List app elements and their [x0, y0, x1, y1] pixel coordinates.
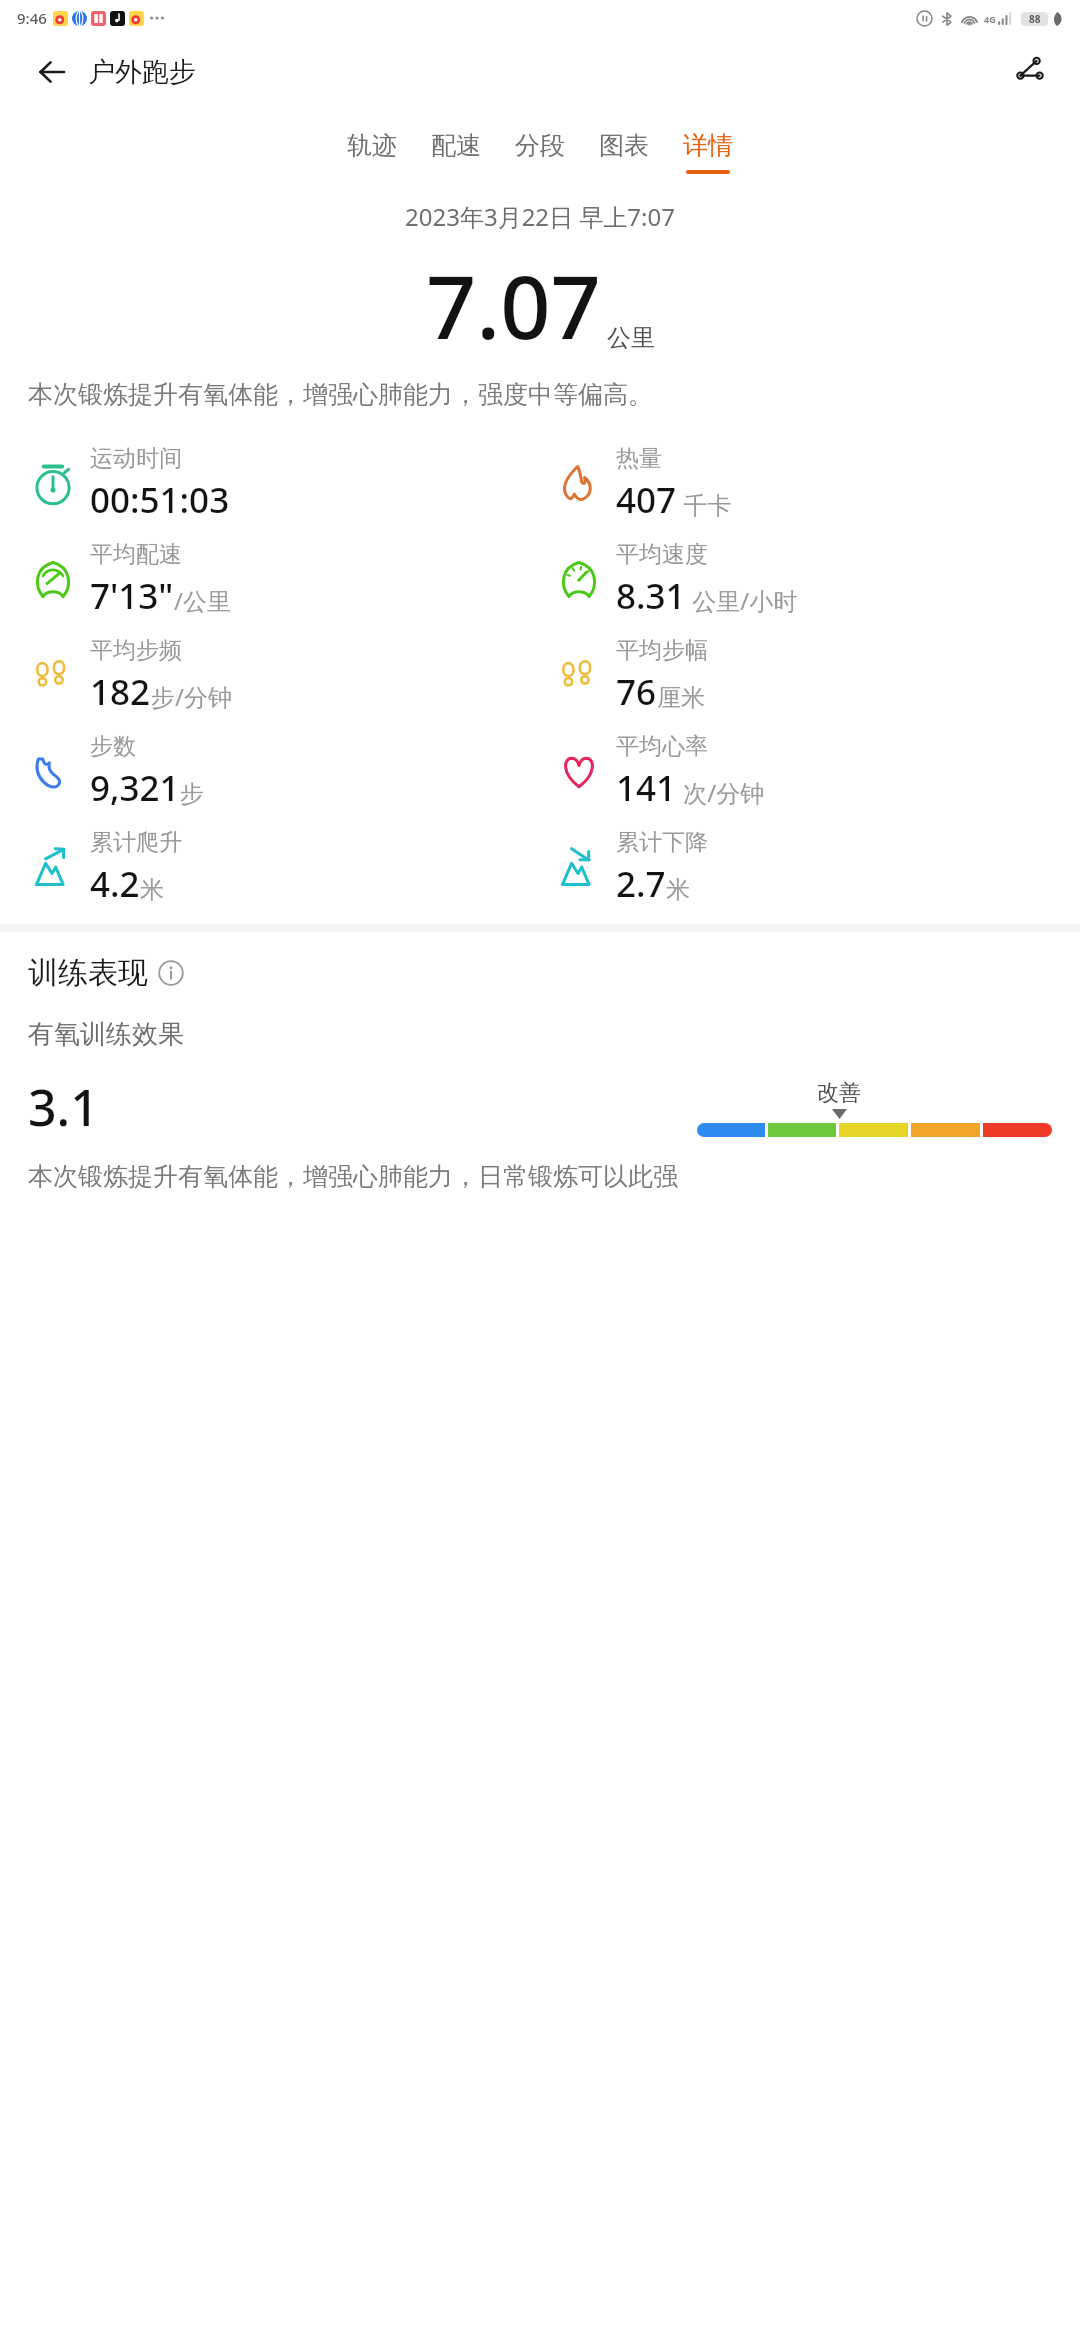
staticText: 户外跑步 [88, 55, 196, 89]
staticText: 训练表现 [28, 954, 148, 992]
staticText: 米 [666, 875, 690, 905]
staticText: 平均步幅 [616, 636, 708, 665]
staticText: 运动时间 [90, 444, 182, 473]
staticText: 平均配速 [90, 540, 182, 569]
button[interactable]: 平均步频 [26, 628, 540, 724]
button[interactable]: 热量 [552, 436, 1080, 532]
staticText: 平均步频 [90, 636, 182, 665]
staticText: 改善 [817, 1079, 861, 1107]
button[interactable]: 累计下降 [552, 820, 1080, 916]
staticText: 2023年3月22日 早上7:07 [405, 200, 675, 233]
staticText: 2.7 [616, 860, 666, 908]
staticText: 次/分钟 [677, 776, 765, 809]
staticText: 平均心率 [616, 732, 708, 761]
button[interactable]: 图表 [582, 126, 666, 178]
staticText: 平均速度 [616, 540, 708, 569]
staticText: 公里 [607, 323, 655, 353]
staticText: 详情 [683, 130, 733, 161]
staticText: 7.07 [426, 245, 601, 365]
staticText: 182 [90, 668, 151, 716]
button[interactable]: 平均心率 [552, 724, 1080, 820]
other: Info [158, 960, 184, 986]
staticText: 7'13" [90, 572, 174, 620]
staticText: 分段 [515, 130, 565, 161]
button[interactable]: Share [1004, 46, 1056, 98]
staticText: 公里/小时 [686, 584, 798, 617]
button[interactable]: 配速 [414, 126, 498, 178]
staticText: 3.1 [28, 1073, 99, 1141]
staticText: 米 [140, 875, 164, 905]
staticText: 步数 [90, 732, 136, 761]
staticText: 8.31 [616, 572, 686, 620]
button[interactable]: 平均步幅 [552, 628, 1080, 724]
button[interactable]: 平均速度 [552, 532, 1080, 628]
staticText: 厘米 [657, 683, 705, 713]
staticText: 4G [984, 13, 996, 25]
button[interactable]: 训练表现 [28, 954, 184, 992]
staticText: 配速 [431, 130, 481, 161]
staticText: 76 [616, 668, 657, 716]
staticText: 141 [616, 764, 677, 812]
staticText: 本次锻炼提升有氧体能，增强心肺能力，强度中等偏高。 [28, 379, 1052, 410]
staticText: 步 [180, 779, 204, 809]
staticText: 千卡 [677, 488, 732, 521]
button[interactable]: 累计爬升 [26, 820, 540, 916]
staticText: 轨迹 [347, 130, 397, 161]
staticText: 88 [1029, 12, 1041, 26]
staticText: 累计下降 [616, 828, 708, 857]
staticText: 有氧训练效果 [28, 1018, 184, 1051]
button[interactable]: 轨迹 [330, 126, 414, 178]
staticText: 本次锻炼提升有氧体能，增强心肺能力，日常锻炼可以此强 [28, 1161, 1052, 1192]
button[interactable]: Back [28, 48, 76, 96]
staticText: 9,321 [90, 764, 180, 812]
button[interactable]: 分段 [498, 126, 582, 178]
staticText: 407 [616, 476, 677, 524]
button[interactable]: 平均配速 [26, 532, 540, 628]
button[interactable]: 运动时间 [26, 436, 540, 532]
staticText: 4.2 [90, 860, 140, 908]
staticText: 热量 [616, 444, 662, 473]
button[interactable]: 步数 [26, 724, 540, 820]
staticText: 步/分钟 [151, 680, 232, 713]
button[interactable]: 详情 [666, 126, 750, 178]
staticText: 00:51:03 [90, 476, 230, 524]
staticText: 9:46 [17, 8, 47, 28]
staticText: 累计爬升 [90, 828, 182, 857]
staticText: 图表 [599, 130, 649, 161]
staticText: /公里 [174, 584, 231, 617]
